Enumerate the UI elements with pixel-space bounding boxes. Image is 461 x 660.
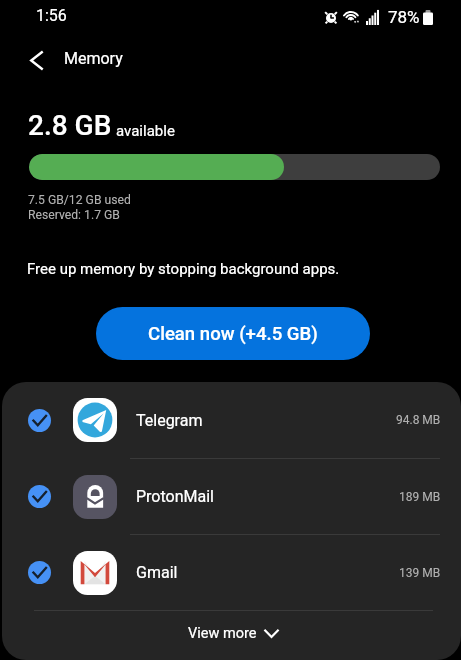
- button[interactable]: Back: [15, 39, 57, 81]
- staticText: Gmail: [136, 563, 178, 582]
- staticText: Free up memory by stopping background ap…: [27, 260, 340, 278]
- staticText: Memory: [64, 49, 123, 68]
- staticText: 7.5 GB/12 GB used Reserved: 1.7 GB: [28, 193, 131, 222]
- staticText: 2.8 GB: [28, 109, 112, 142]
- staticText: 1:56: [36, 6, 67, 25]
- staticText: 189 MB: [399, 490, 441, 504]
- staticText: View more: [188, 625, 257, 642]
- staticText: available: [116, 122, 175, 140]
- button[interactable]: View more: [2, 611, 461, 657]
- button[interactable]: Telegram: [2, 382, 461, 458]
- staticText: Telegram: [136, 411, 203, 430]
- staticText: 139 MB: [399, 566, 441, 580]
- staticText: 78%: [388, 7, 420, 27]
- button[interactable]: Clean now (+4.5 GB): [96, 307, 370, 360]
- staticText: ProtonMail: [136, 487, 214, 506]
- staticText: 94.8 MB: [396, 413, 441, 427]
- button[interactable]: ProtonMail: [2, 459, 461, 534]
- staticText: Clean now (+4.5 GB): [148, 323, 318, 345]
- button[interactable]: Gmail: [2, 535, 461, 610]
